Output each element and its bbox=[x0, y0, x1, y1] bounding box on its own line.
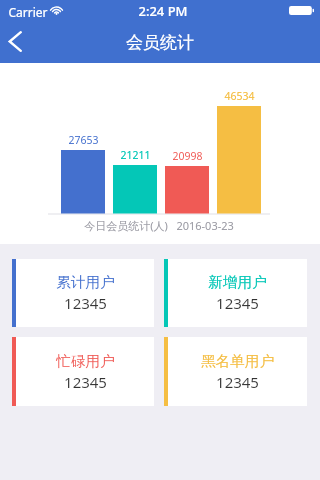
staticText: 12345 bbox=[64, 293, 107, 313]
button[interactable]: 忙碌用户 bbox=[12, 337, 154, 406]
button[interactable]: 黑名单用户 bbox=[164, 337, 307, 406]
button[interactable]: Back bbox=[0, 20, 36, 63]
staticText: 12345 bbox=[216, 372, 259, 392]
staticText: 黑名单用户 bbox=[201, 352, 274, 370]
staticText: Carrier bbox=[8, 4, 48, 20]
staticText: 21211 bbox=[120, 148, 151, 162]
button[interactable]: 累计用户 bbox=[12, 259, 154, 327]
staticText: 46534 bbox=[224, 89, 255, 103]
staticText: 会员统计 bbox=[126, 32, 194, 53]
staticText: 新增用户 bbox=[208, 273, 267, 291]
staticText: 忙碌用户 bbox=[56, 352, 115, 370]
button[interactable]: 新增用户 bbox=[164, 259, 307, 327]
staticText: 今日会员统计(人) 2016-03-23 bbox=[84, 218, 234, 233]
staticText: 27653 bbox=[68, 133, 99, 147]
staticText: 累计用户 bbox=[56, 273, 115, 291]
staticText: 20998 bbox=[172, 149, 203, 163]
staticText: 12345 bbox=[216, 293, 259, 313]
staticText: 2:24 PM bbox=[138, 2, 188, 20]
staticText: 12345 bbox=[64, 372, 107, 392]
